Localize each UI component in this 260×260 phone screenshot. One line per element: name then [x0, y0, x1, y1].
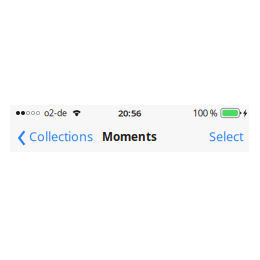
staticText: 100 %: [193, 107, 218, 119]
staticText: Select: [209, 128, 243, 145]
staticText: Collections: [29, 128, 93, 145]
staticText: Moments: [102, 129, 157, 144]
staticText: o2-de: [44, 107, 67, 119]
button[interactable]: Select: [203, 121, 249, 152]
staticText: 20:56: [118, 107, 141, 119]
button[interactable]: Collections: [10, 121, 99, 152]
